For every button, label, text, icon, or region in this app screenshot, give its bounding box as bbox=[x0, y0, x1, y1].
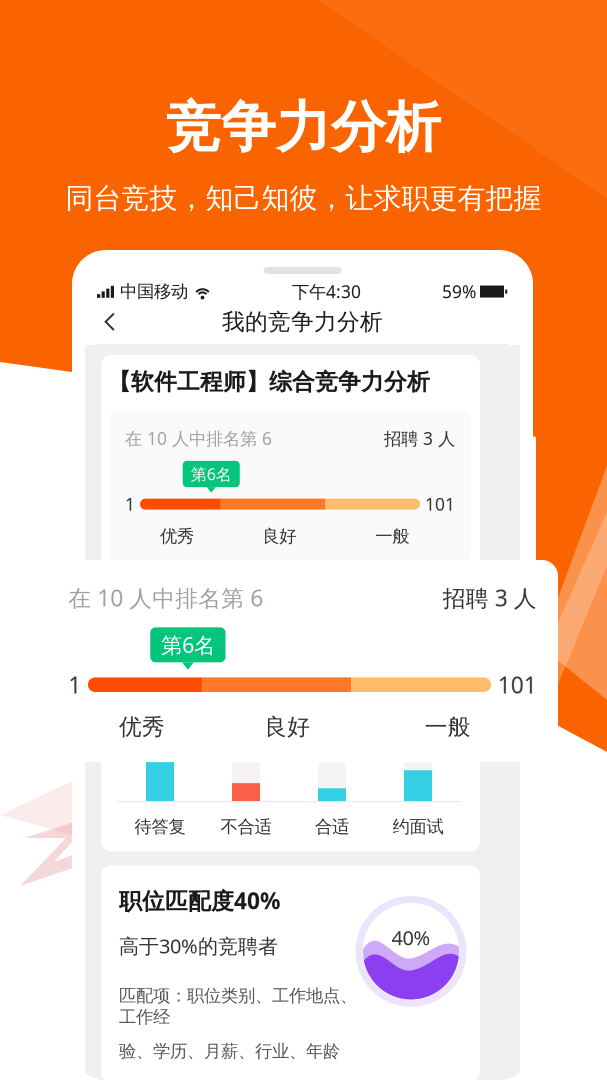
staticText: 101 bbox=[425, 493, 455, 516]
staticText: 合适 bbox=[315, 816, 349, 837]
button[interactable]: 返回 bbox=[85, 301, 133, 343]
staticText: 待答复 bbox=[134, 816, 185, 837]
staticText: 匹配项：职位类别、工作地点、工作经 bbox=[119, 985, 357, 1028]
staticText: 下午4:30 bbox=[292, 280, 361, 303]
staticText: 中国移动 bbox=[120, 281, 188, 302]
staticText: 不合适 bbox=[220, 816, 271, 837]
staticText: 招聘 3 人 bbox=[384, 427, 455, 450]
staticText: 竞争力分析 bbox=[166, 94, 441, 161]
staticText: 良好 bbox=[262, 526, 296, 547]
staticText: 职位匹配度40% bbox=[119, 885, 280, 916]
staticText: 约面试 bbox=[392, 816, 443, 837]
staticText: 1 bbox=[125, 493, 135, 516]
staticText: 良好 bbox=[264, 713, 310, 741]
staticText: 一般 bbox=[375, 526, 409, 547]
staticText: 【软件工程师】综合竞争力分析 bbox=[108, 368, 430, 396]
staticText: 第6名 bbox=[161, 631, 215, 659]
staticText: 101 bbox=[498, 670, 537, 700]
staticText: 第6名 bbox=[191, 463, 232, 485]
staticText: 招聘 3 人 bbox=[443, 583, 537, 613]
staticText: 验、学历、月薪、行业、年龄 bbox=[119, 1041, 340, 1062]
staticText: 同台竞技，知己知彼，让求职更有把握 bbox=[65, 181, 541, 215]
staticText: 我的竞争力分析 bbox=[222, 308, 383, 336]
staticText: 优秀 bbox=[119, 713, 165, 741]
staticText: 40% bbox=[391, 924, 430, 951]
staticText: 综合竞争力=职位匹配度+简历完善度 bbox=[161, 583, 419, 604]
staticText: 在 10 人中排名第 6 bbox=[68, 583, 263, 613]
staticText: 高于30%的竞聘者 bbox=[119, 933, 278, 959]
staticText: 一般 bbox=[425, 713, 471, 741]
staticText: 59% bbox=[442, 280, 476, 303]
staticText: 在 10 人中排名第 6 bbox=[125, 427, 272, 450]
staticText: 1 bbox=[68, 670, 81, 700]
staticText: 优秀 bbox=[160, 526, 194, 547]
